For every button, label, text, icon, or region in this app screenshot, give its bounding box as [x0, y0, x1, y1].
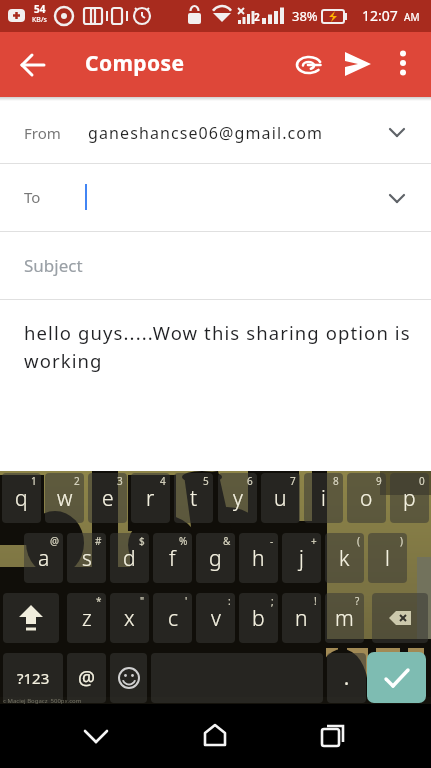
staticText: @	[50, 534, 59, 548]
staticText: (	[357, 534, 360, 548]
button[interactable]	[10, 42, 56, 88]
staticText: a	[38, 544, 50, 573]
button[interactable]: .	[327, 653, 366, 703]
staticText: #	[95, 534, 102, 548]
staticText: .	[344, 665, 350, 691]
button[interactable]	[286, 42, 332, 88]
button[interactable]	[335, 42, 381, 88]
staticText: -	[270, 534, 274, 548]
staticText: i	[321, 484, 326, 513]
button[interactable]: To	[0, 164, 431, 231]
staticText: 5	[203, 474, 209, 488]
staticText: l	[385, 544, 390, 573]
staticText: u	[274, 484, 287, 513]
button[interactable]: d	[110, 533, 149, 583]
staticText: From	[24, 123, 61, 143]
staticText: '	[185, 594, 188, 608]
button[interactable]: y	[218, 473, 257, 523]
staticText: k	[339, 544, 350, 573]
button[interactable]: o	[347, 473, 386, 523]
staticText: @	[78, 665, 96, 691]
staticText: ?	[355, 594, 360, 608]
button[interactable]	[372, 593, 428, 643]
staticText: *	[96, 594, 102, 608]
button[interactable]: x	[110, 593, 149, 643]
staticText: d	[123, 544, 136, 573]
button[interactable]: j	[282, 533, 321, 583]
staticText: 8	[333, 474, 339, 488]
staticText: h	[252, 544, 265, 573]
staticText: 2	[254, 10, 260, 24]
button[interactable]: w	[45, 473, 84, 523]
staticText: ;	[271, 594, 274, 608]
button[interactable]	[3, 593, 59, 643]
staticText: 38%	[292, 7, 318, 25]
staticText: 2	[74, 474, 80, 488]
staticText: 0	[419, 474, 425, 488]
button[interactable]: c	[153, 593, 192, 643]
button[interactable]: a	[24, 533, 63, 583]
staticText: Subject	[24, 254, 83, 277]
button[interactable]: p	[390, 473, 429, 523]
button[interactable]: g	[196, 533, 235, 583]
staticText: 4	[160, 474, 166, 488]
button[interactable]	[367, 652, 426, 703]
button[interactable]: h	[239, 533, 278, 583]
staticText: o	[360, 484, 373, 513]
button[interactable]: hello guys.....Wow this sharing option i…	[0, 300, 431, 471]
button[interactable]: s	[67, 533, 106, 583]
staticText: "	[140, 594, 145, 608]
staticText: 7	[290, 474, 296, 488]
button[interactable]: @	[67, 653, 106, 703]
staticText: z	[82, 604, 92, 633]
staticText: +	[311, 534, 317, 548]
button[interactable]: n	[282, 593, 321, 643]
button[interactable]	[191, 712, 239, 760]
button[interactable]: ?123	[3, 653, 63, 703]
button[interactable]: f	[153, 533, 192, 583]
staticText: working	[24, 348, 103, 373]
staticText: ?123	[17, 668, 50, 688]
staticText: w	[57, 484, 73, 513]
staticText: n	[295, 604, 308, 633]
staticText: 3	[117, 474, 123, 488]
button[interactable]: b	[239, 593, 278, 643]
button[interactable]: From	[0, 101, 431, 163]
button[interactable]	[110, 653, 147, 703]
staticText: y	[233, 484, 243, 513]
staticText: b	[252, 604, 265, 633]
staticText: t	[190, 484, 198, 513]
button[interactable]: i	[304, 473, 343, 523]
staticText: v	[211, 604, 221, 633]
button[interactable]	[72, 712, 120, 760]
staticText: )	[400, 534, 403, 548]
button[interactable]: Subject	[0, 232, 431, 299]
staticText: 6	[247, 474, 253, 488]
button[interactable]	[309, 712, 357, 760]
staticText: m	[335, 604, 354, 633]
staticText: j	[299, 544, 304, 573]
button[interactable]	[382, 42, 424, 84]
staticText: Compose	[85, 49, 185, 78]
button[interactable]: k	[325, 533, 364, 583]
button[interactable]: v	[196, 593, 235, 643]
staticText: &	[223, 534, 231, 548]
button[interactable]: l	[368, 533, 407, 583]
button[interactable]: r	[131, 473, 170, 523]
button[interactable]: u	[261, 473, 300, 523]
staticText: q	[15, 484, 28, 513]
button[interactable]: q	[2, 473, 41, 523]
staticText: :	[228, 594, 231, 608]
staticText: 9	[376, 474, 382, 488]
staticText: %	[179, 534, 188, 548]
button[interactable]: m	[325, 593, 364, 643]
button[interactable]: t	[174, 473, 213, 523]
staticText: x	[124, 604, 135, 633]
staticText: 54	[34, 2, 46, 16]
button[interactable]: e	[88, 473, 127, 523]
staticText: To	[24, 187, 41, 207]
staticText: p	[403, 484, 416, 513]
staticText: c Maciej Bogacz 500px.com	[3, 697, 82, 705]
button[interactable]: z	[67, 593, 106, 643]
